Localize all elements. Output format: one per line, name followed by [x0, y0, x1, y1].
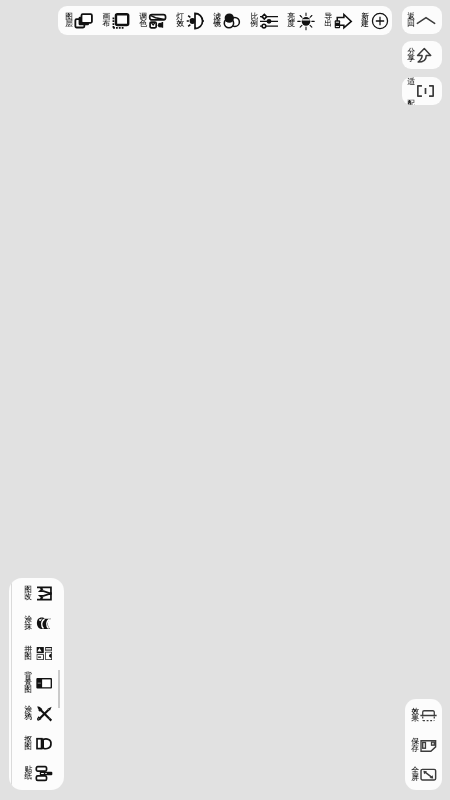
staticText: 涂抹 — [24, 615, 32, 632]
button[interactable]: 保存 — [405, 731, 442, 759]
staticText: 保存 — [411, 737, 419, 754]
staticText: 分享 — [407, 47, 415, 64]
button[interactable]: 滤镜 — [206, 6, 243, 35]
staticText: 抠图 — [24, 735, 32, 752]
button[interactable]: 返回 — [402, 6, 442, 34]
staticText: 全屏 — [411, 766, 419, 783]
button[interactable]: 亮度 — [280, 6, 317, 35]
staticText: 新建 — [361, 12, 369, 29]
button[interactable]: 全屏 — [405, 760, 442, 788]
button[interactable]: 新建 — [354, 6, 391, 35]
button[interactable]: 背景图 — [9, 668, 64, 698]
button[interactable]: 灯效 — [169, 6, 206, 35]
staticText: 效果 — [411, 707, 419, 724]
staticText: 比例 — [250, 12, 258, 29]
button[interactable]: 图层 — [58, 6, 95, 35]
staticText: 返回 — [407, 12, 415, 29]
button[interactable]: 效果 — [405, 701, 442, 729]
staticText: 背景图 — [24, 671, 32, 695]
staticText: 调色 — [139, 12, 147, 29]
button[interactable]: 图改 — [9, 578, 64, 608]
staticText: 图改 — [24, 585, 32, 602]
button[interactable]: 分享 — [402, 41, 442, 69]
button[interactable]: 导出 — [317, 6, 354, 35]
staticText: 涂鸦 — [24, 705, 32, 722]
button[interactable]: 拼图 — [9, 638, 64, 668]
button[interactable]: 抠图 — [9, 728, 64, 758]
staticText: 适配 — [407, 77, 415, 105]
button[interactable]: 比例 — [243, 6, 280, 35]
button[interactable]: 画布 — [95, 6, 132, 35]
staticText: 灯效 — [176, 12, 184, 29]
button[interactable]: 调色 — [132, 6, 169, 35]
button[interactable]: 贴纸 — [9, 758, 64, 788]
staticText: 拼图 — [24, 645, 32, 662]
staticText: 画布 — [102, 12, 110, 29]
button[interactable]: 涂抹 — [9, 608, 64, 638]
staticText: 滤镜 — [213, 12, 221, 29]
button[interactable]: 涂鸦 — [9, 698, 64, 728]
staticText: 贴纸 — [24, 765, 32, 782]
staticText: 亮度 — [287, 12, 295, 29]
staticText: 导出 — [324, 12, 332, 29]
staticText: 图层 — [65, 12, 73, 29]
button[interactable]: 适配 — [402, 77, 442, 105]
